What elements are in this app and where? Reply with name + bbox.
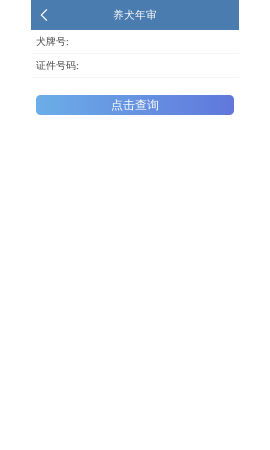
staticText: 犬牌号: (36, 35, 69, 48)
button[interactable]: 证件号码: (31, 54, 239, 77)
button[interactable]: 点击查询 (36, 95, 234, 115)
staticText: 养犬年审 (113, 8, 157, 22)
button[interactable]: 犬牌号: (31, 30, 239, 53)
staticText: 证件号码: (36, 59, 79, 72)
button[interactable]: Back (31, 0, 57, 30)
staticText: 点击查询 (111, 97, 159, 112)
